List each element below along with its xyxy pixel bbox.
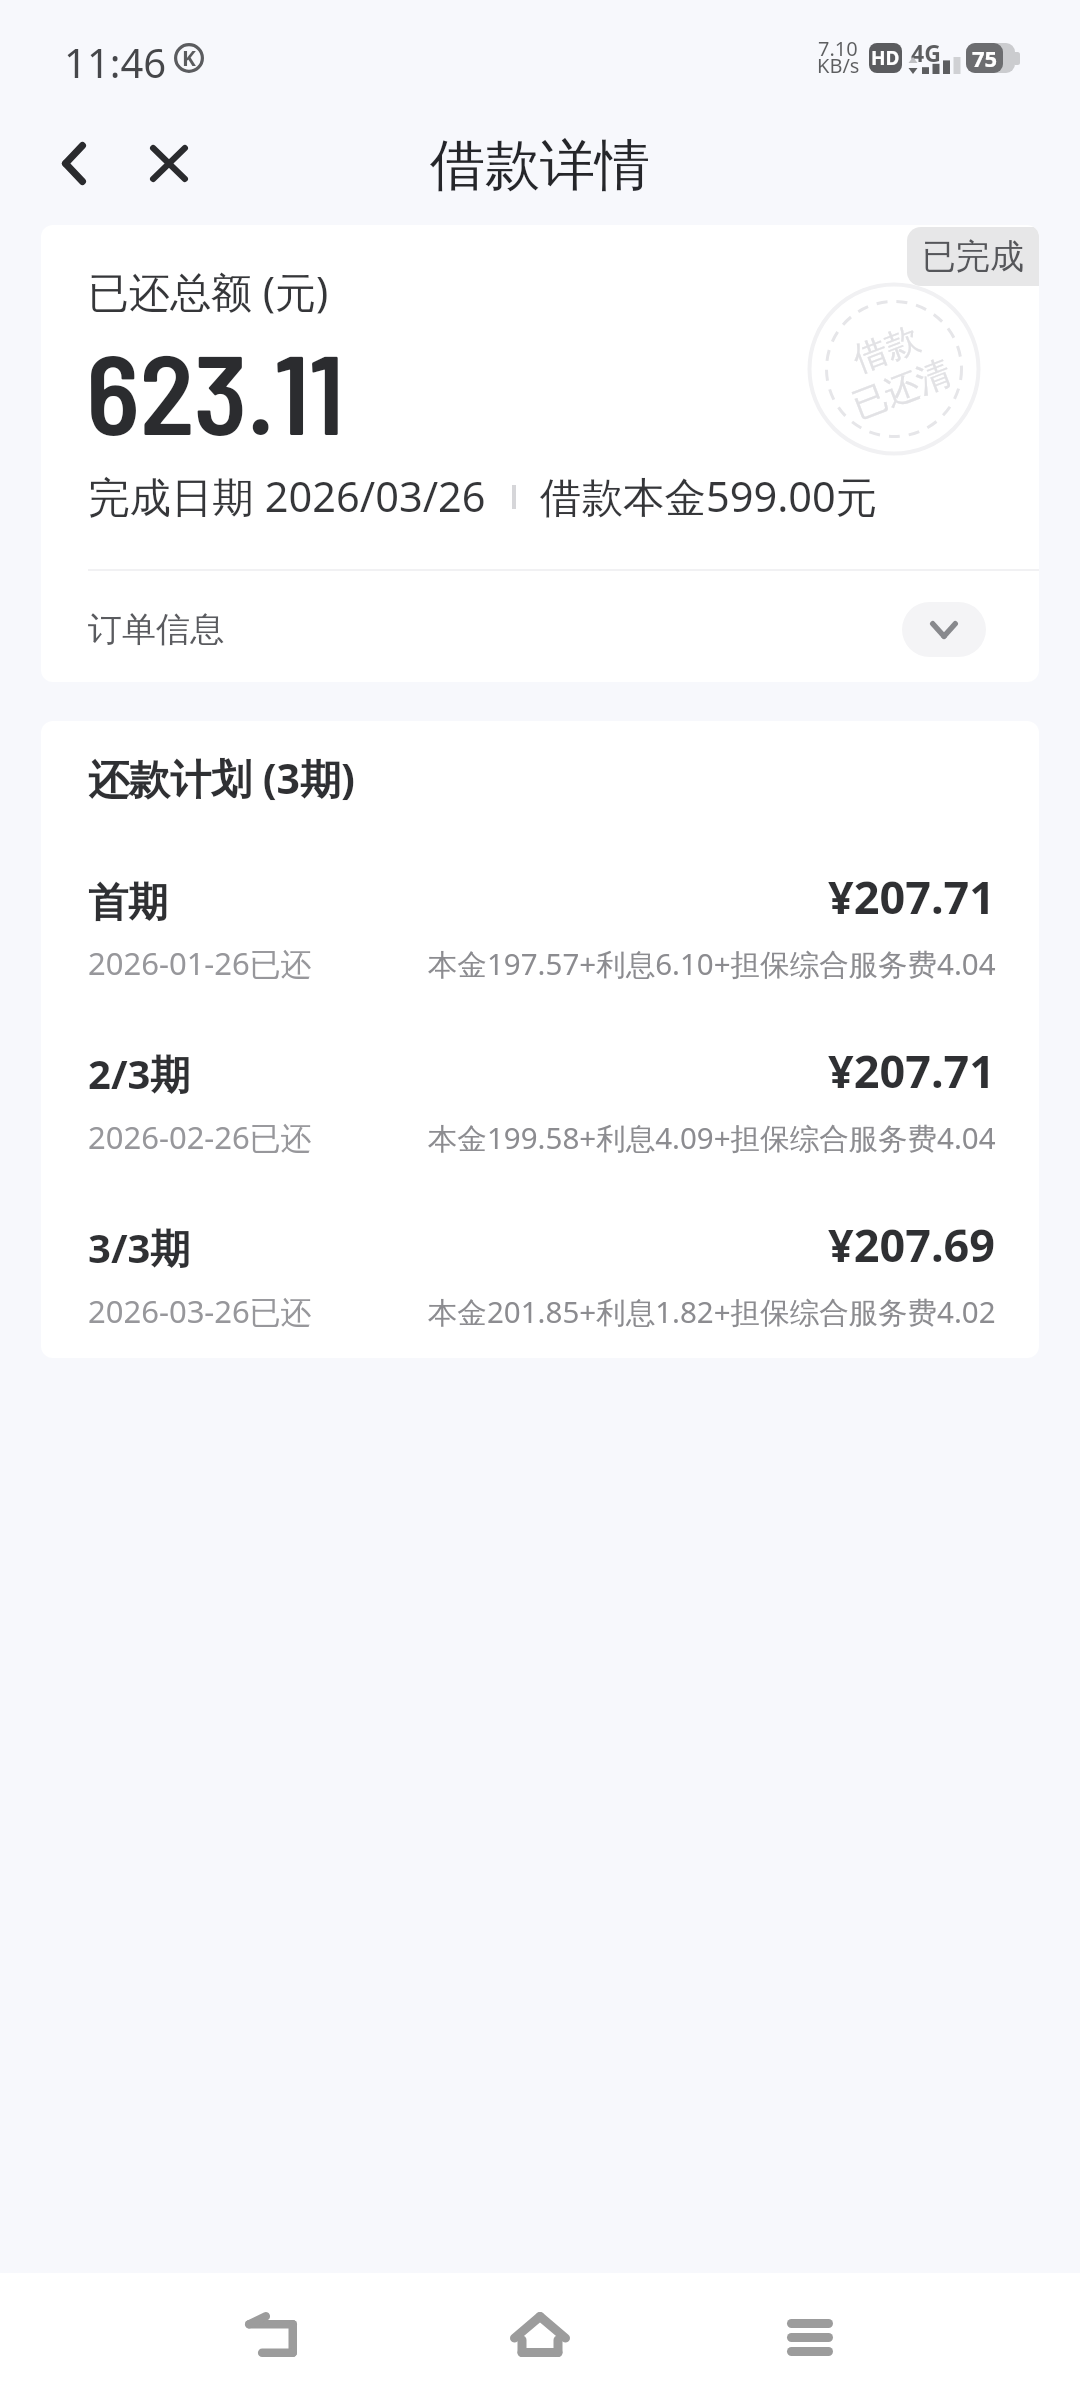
staticText: 3/3期 <box>88 1220 191 1275</box>
staticText: 本金199.58+利息4.09+担保综合服务费4.04 <box>428 1117 996 1157</box>
button[interactable]: 订单信息 <box>41 577 1039 682</box>
staticText: 2/3期 <box>88 1046 191 1101</box>
staticText: HD <box>871 45 900 71</box>
button[interactable]: Close <box>114 108 224 218</box>
staticText: 订单信息 <box>88 608 224 651</box>
button[interactable]: Back <box>19 108 129 218</box>
staticText: ¥207.69 <box>828 1214 996 1275</box>
staticText: 2026-03-26已还 <box>88 1290 312 1332</box>
staticText: 首期 <box>88 877 168 927</box>
staticText: 已还清 <box>846 351 957 427</box>
button[interactable]: Back <box>201 2273 341 2400</box>
staticText: 完成日期 2026/03/26 <box>88 468 486 525</box>
staticText: 2026-02-26已还 <box>88 1116 312 1158</box>
staticText: ¥207.71 <box>828 866 996 927</box>
button[interactable]: Home <box>470 2273 610 2400</box>
staticText: 借款详情 <box>430 131 650 200</box>
staticText: ¥207.71 <box>828 1040 996 1101</box>
staticText: 本金201.85+利息1.82+担保综合服务费4.02 <box>428 1291 996 1331</box>
staticText: 还款计划 (3期) <box>88 750 355 806</box>
button[interactable]: 3/3期 <box>41 1214 1039 1358</box>
staticText: 借款 <box>847 317 926 381</box>
staticText: 借款本金599.00元 <box>540 468 878 525</box>
staticText: 已还总额 (元) <box>88 263 329 319</box>
staticText: 75 <box>972 43 998 73</box>
staticText: 7.10 <box>818 35 858 62</box>
staticText: 本金197.57+利息6.10+担保综合服务费4.04 <box>428 943 996 983</box>
staticText: 11:46 <box>64 35 167 89</box>
button[interactable]: 2/3期 <box>41 1040 1039 1200</box>
staticText: KB/s <box>817 52 860 79</box>
button[interactable]: Menu <box>740 2273 880 2400</box>
button[interactable]: 首期 <box>41 866 1039 1026</box>
staticText: 已完成 <box>922 235 1024 278</box>
staticText: K <box>182 44 196 73</box>
staticText: 2026-01-26已还 <box>88 942 312 984</box>
staticText: 4G <box>911 37 941 68</box>
staticText: 623.11 <box>86 323 344 457</box>
